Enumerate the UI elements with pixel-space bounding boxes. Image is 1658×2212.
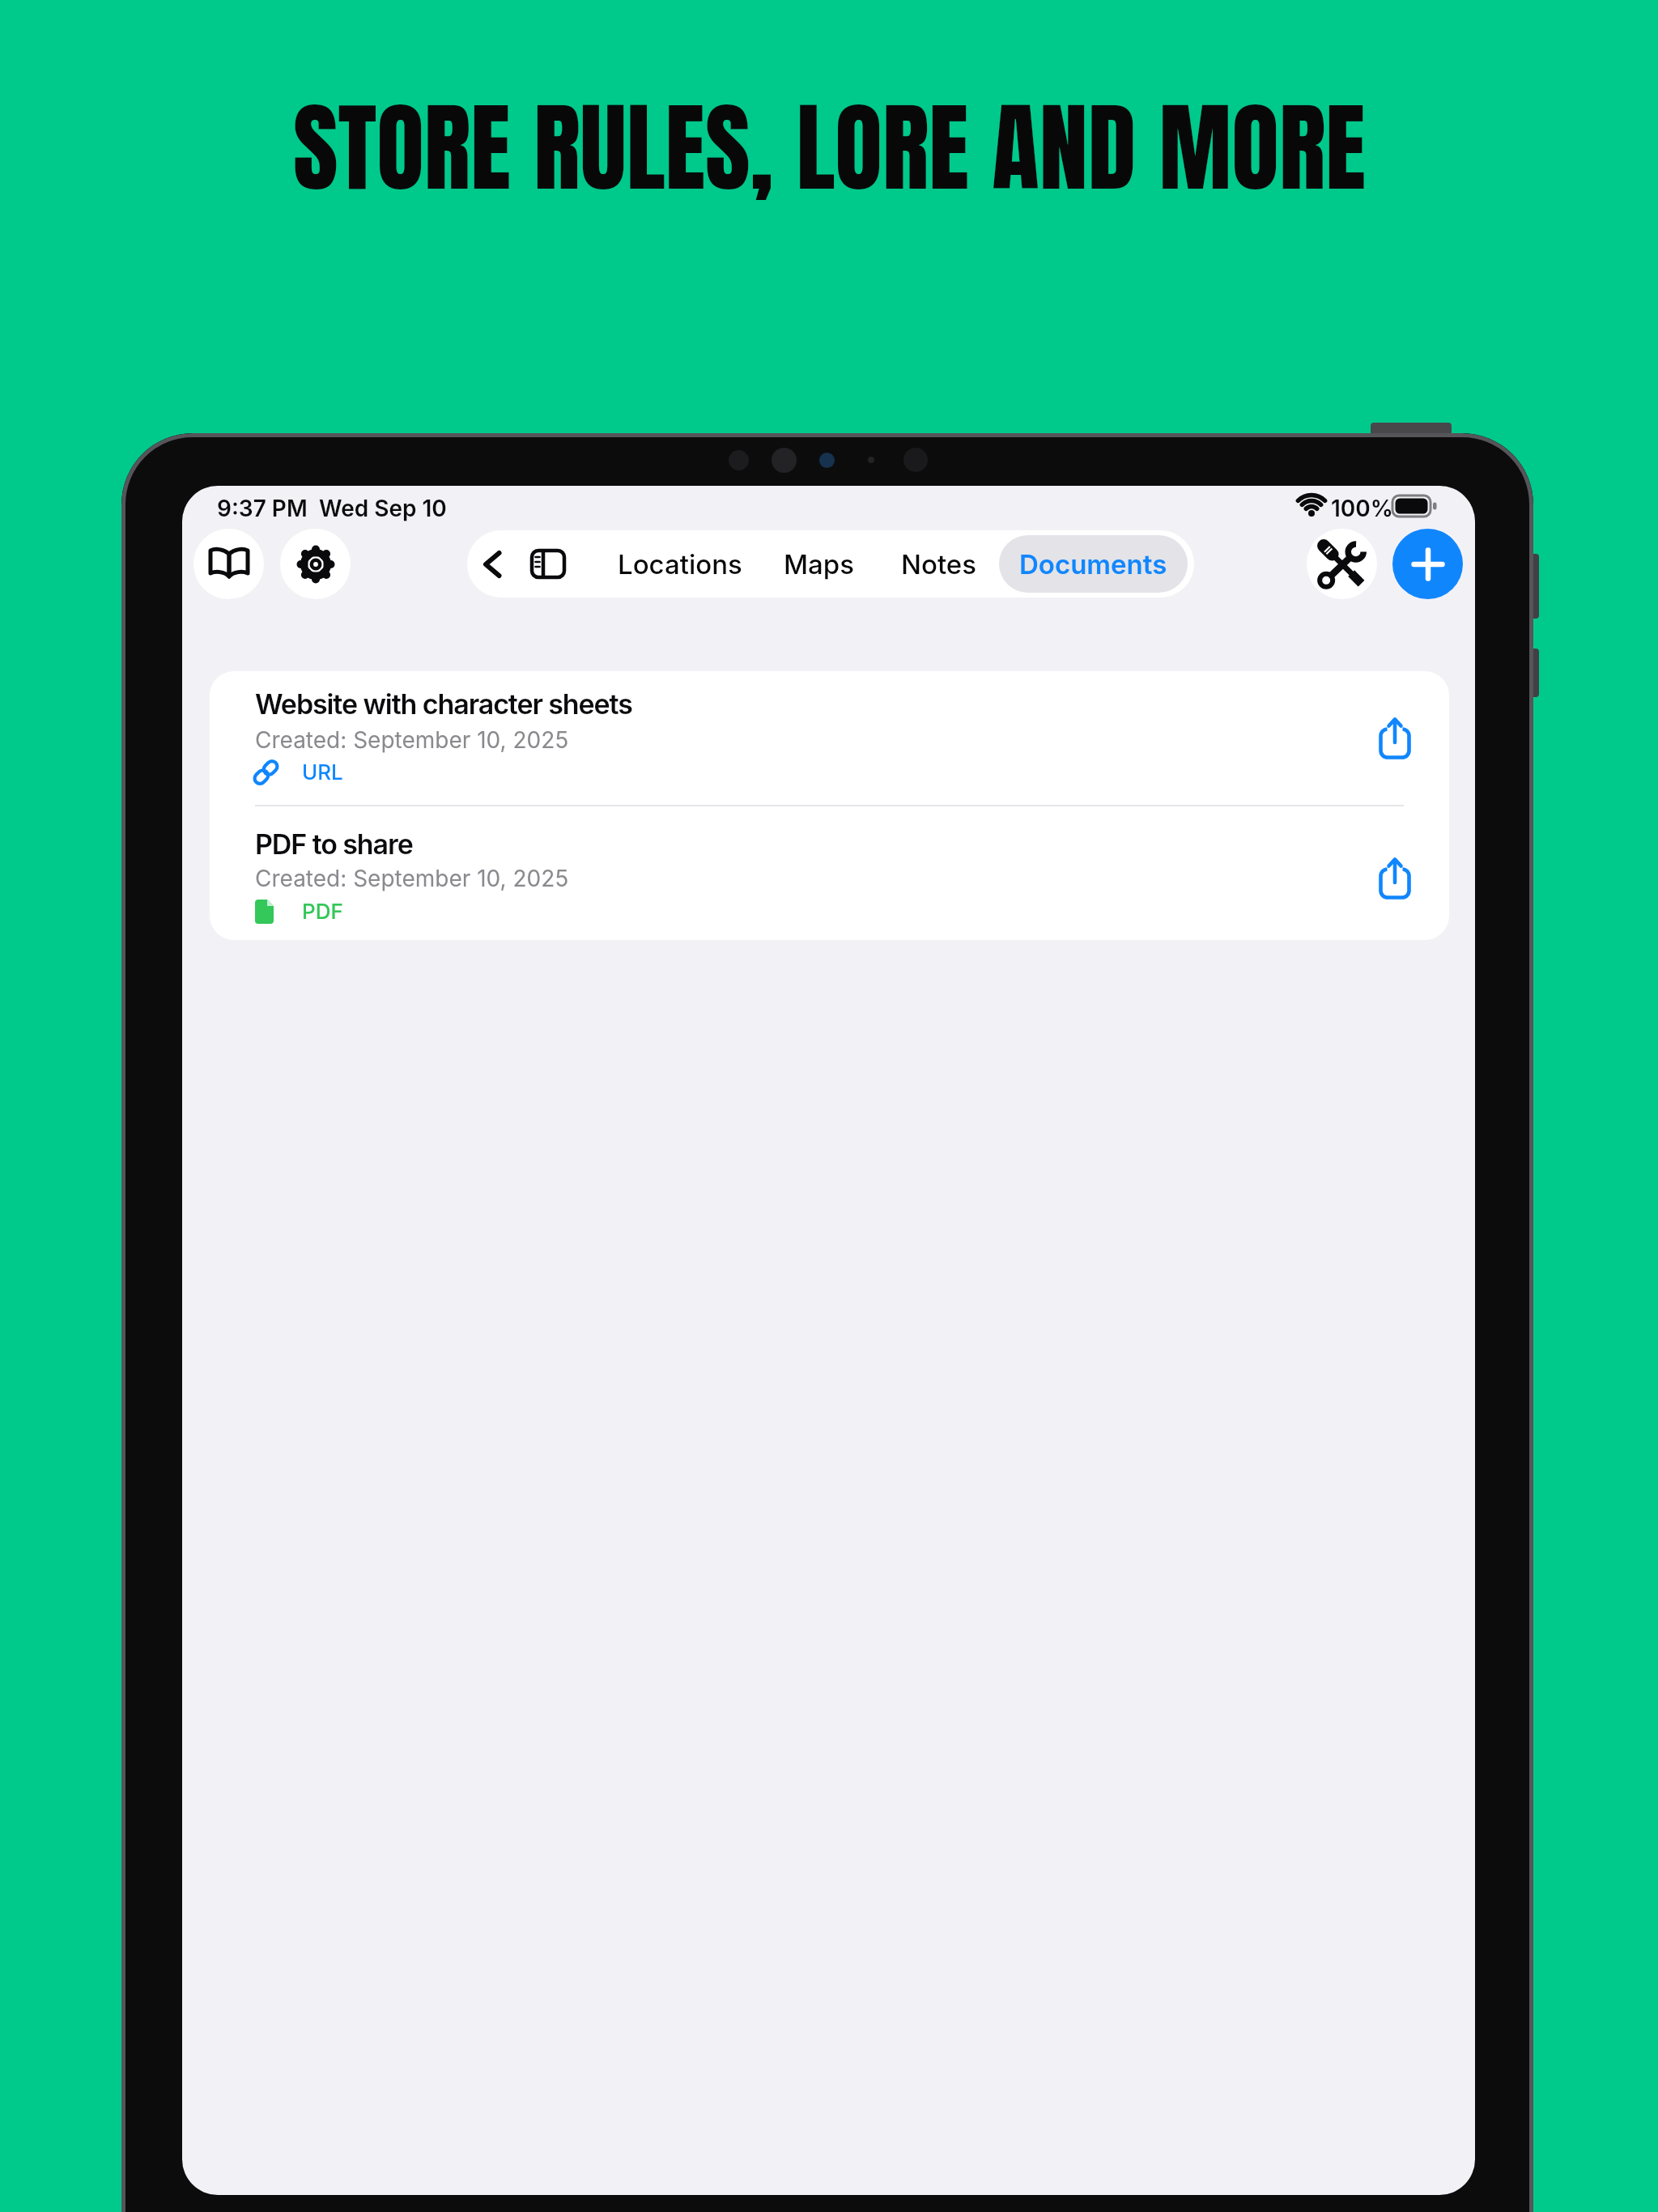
button[interactable] [210, 671, 1449, 806]
staticText: Website with character sheets [255, 687, 632, 721]
staticText: Locations [618, 548, 742, 581]
staticText: Maps [784, 548, 855, 581]
staticText: Wed Sep 10 [319, 495, 447, 522]
staticText: 9:37 PM [217, 495, 308, 522]
staticText: Created: September 10, 2025 [255, 726, 569, 754]
button[interactable] [478, 530, 506, 598]
button[interactable] [280, 529, 351, 599]
button[interactable] [1392, 529, 1463, 599]
button[interactable] [193, 529, 264, 599]
button[interactable] [210, 806, 1449, 940]
button[interactable] [1375, 856, 1414, 901]
staticText: Created: September 10, 2025 [255, 865, 569, 892]
button[interactable] [1375, 716, 1414, 761]
staticText: URL [302, 759, 343, 785]
button[interactable]: Maps [784, 530, 855, 598]
button[interactable] [529, 530, 568, 598]
staticText: STORE RULES, LORE AND MORE [293, 74, 1366, 220]
staticText: Notes [901, 548, 976, 581]
button[interactable]: Locations [618, 530, 742, 598]
staticText: 100% [1331, 495, 1393, 522]
button[interactable] [1307, 529, 1377, 599]
button[interactable]: Notes [901, 530, 976, 598]
staticText: PDF to share [255, 827, 413, 861]
staticText: Documents [1019, 548, 1167, 581]
staticText: PDF [302, 899, 343, 924]
button[interactable]: Documents [999, 535, 1188, 593]
